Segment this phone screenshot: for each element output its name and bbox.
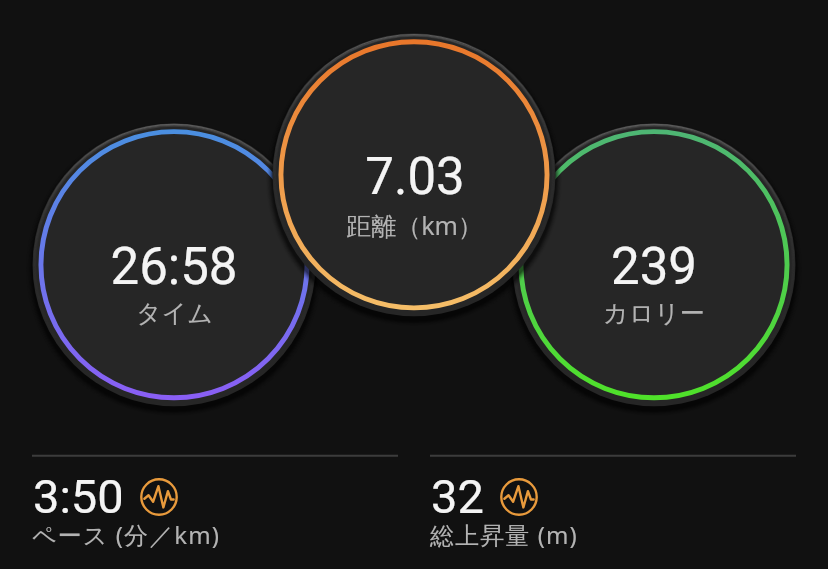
button[interactable]: 距離（km） 7.03 (279, 39, 549, 309)
button[interactable]: カロリー 239 (519, 129, 789, 399)
button[interactable]: 32 (430, 454, 796, 545)
button[interactable]: タイム 26:58 (39, 129, 309, 399)
staticText: タイム (136, 298, 213, 329)
staticText: 距離（km） (346, 208, 483, 242)
staticText: 26:58 (110, 237, 238, 297)
staticText: ペース (分／km) (32, 518, 221, 551)
staticText: 239 (611, 237, 697, 297)
staticText: 総上昇量 (m) (430, 518, 578, 551)
staticText: 3:50 (33, 469, 124, 524)
other: Show 総上昇量 (m) graph (500, 478, 538, 516)
staticText: カロリー (603, 298, 705, 329)
staticText: 32 (431, 469, 484, 524)
staticText: 7.03 (365, 147, 465, 207)
other: Show ペース (分／km) graph (140, 478, 178, 516)
button[interactable]: 3:50 (32, 454, 398, 545)
